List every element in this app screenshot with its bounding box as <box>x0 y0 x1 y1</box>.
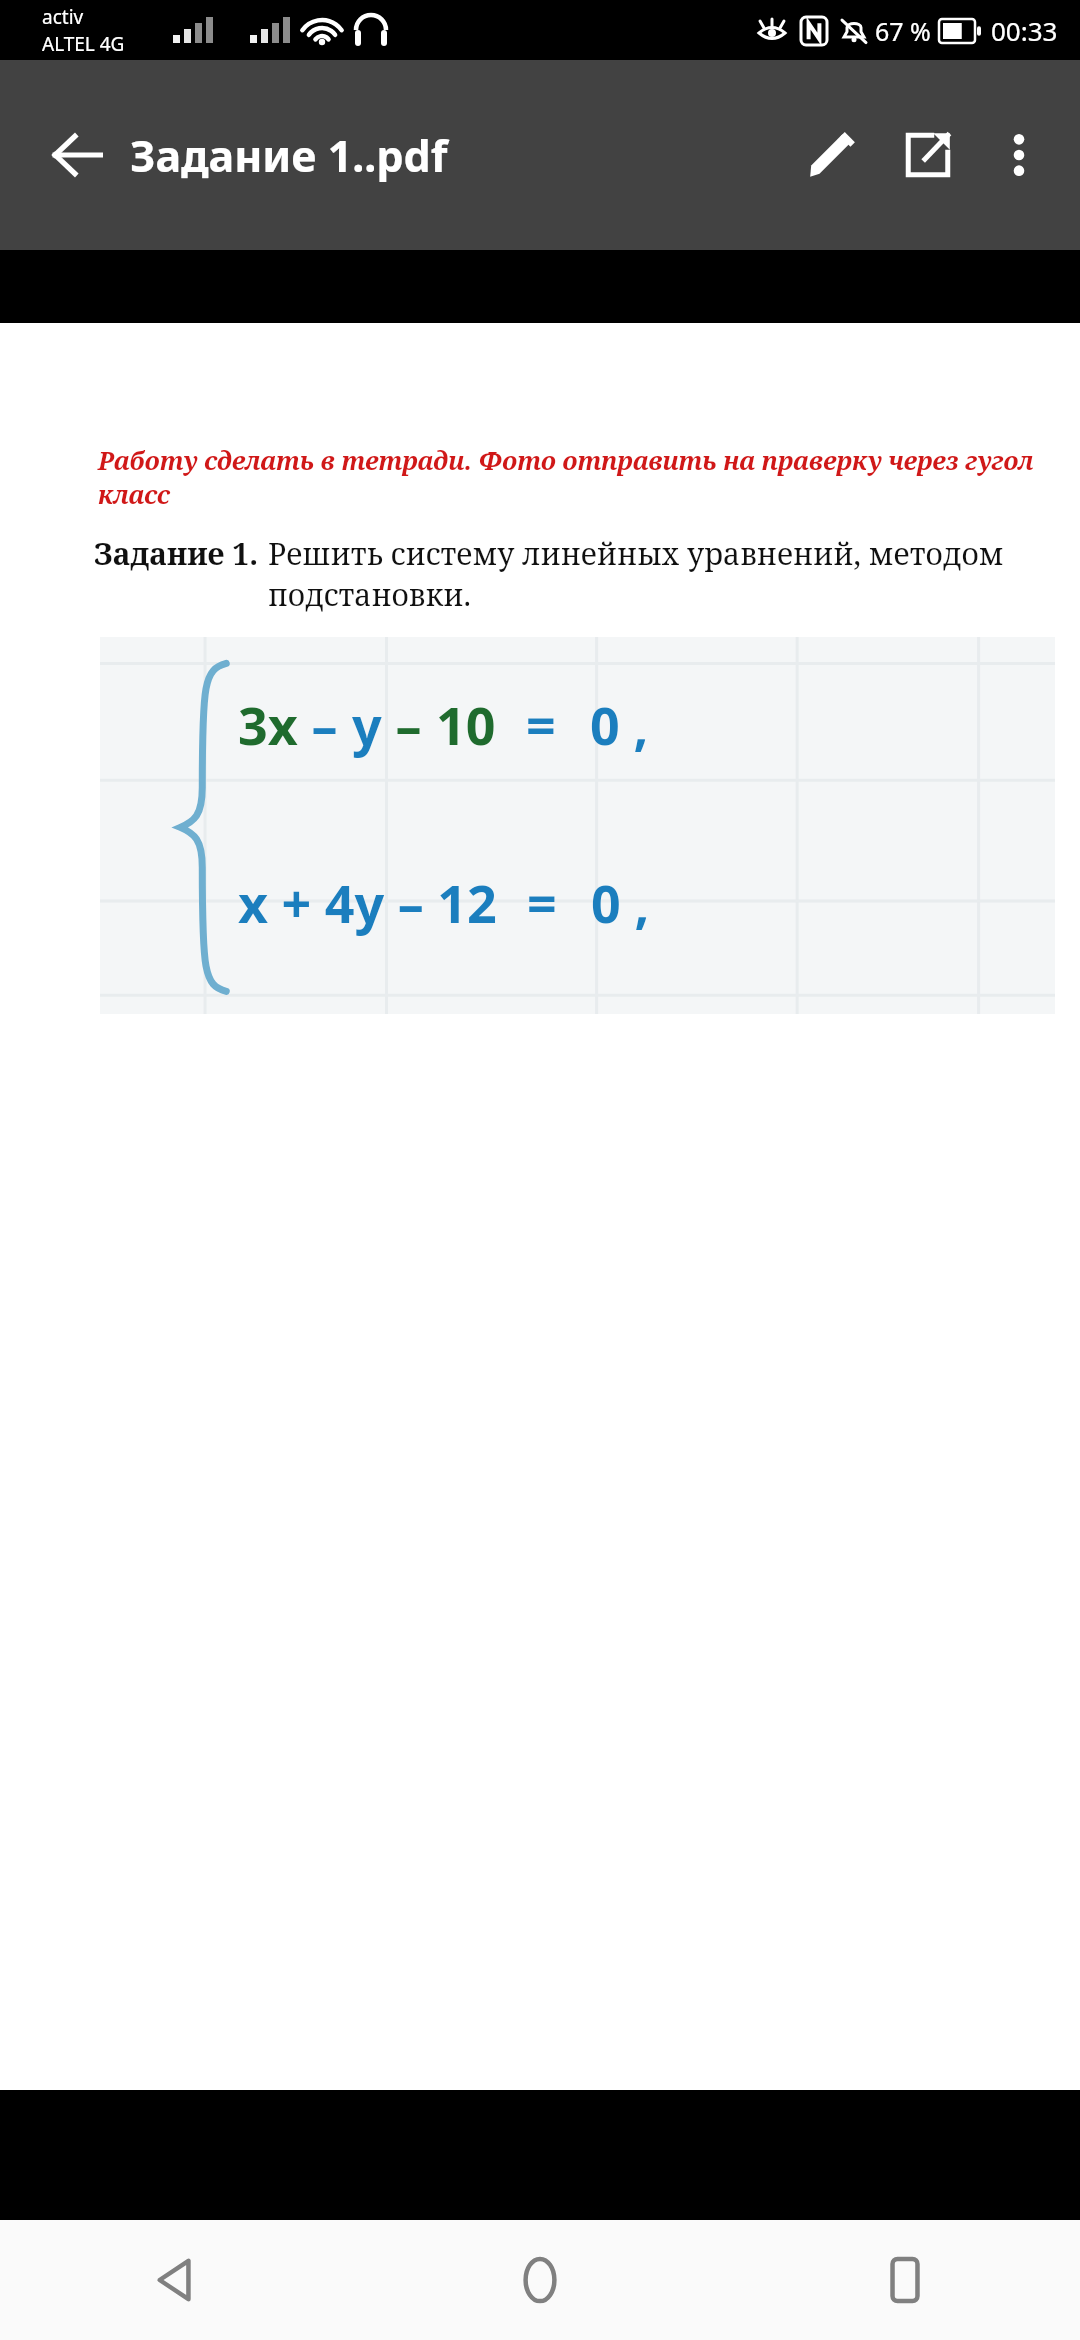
button[interactable]: Back <box>34 112 120 198</box>
staticText: , <box>621 867 650 938</box>
button[interactable]: Home <box>485 2225 595 2335</box>
staticText: Решить систему линейных уравнений, метод… <box>268 533 1050 615</box>
staticText: 0 <box>590 689 620 760</box>
staticText: x + 4y – 12 <box>238 867 497 938</box>
staticText: Задание 1..pdf <box>130 126 448 185</box>
staticText: 10 <box>436 689 496 760</box>
staticText: 67 % <box>875 14 931 48</box>
button[interactable]: Open in new <box>880 107 976 203</box>
staticText: , <box>620 689 649 760</box>
staticText: = <box>526 689 556 760</box>
staticText: – <box>382 689 436 760</box>
staticText: ALTEL 4G <box>42 31 125 57</box>
staticText: 3x <box>238 689 298 760</box>
staticText: 00:33 <box>991 13 1058 48</box>
staticText: = <box>527 867 557 938</box>
staticText: activ <box>42 4 84 30</box>
button[interactable]: Back <box>120 2225 230 2335</box>
staticText: Работу сделать в тетради. Фото отправить… <box>98 443 1040 511</box>
staticText: 0 <box>591 867 621 938</box>
button[interactable]: Recent apps <box>850 2225 960 2335</box>
staticText: – <box>298 689 352 760</box>
button[interactable]: More options <box>976 112 1062 198</box>
staticText: y <box>352 689 382 760</box>
button[interactable]: Edit <box>784 107 880 203</box>
staticText: Задание 1. <box>94 533 259 574</box>
